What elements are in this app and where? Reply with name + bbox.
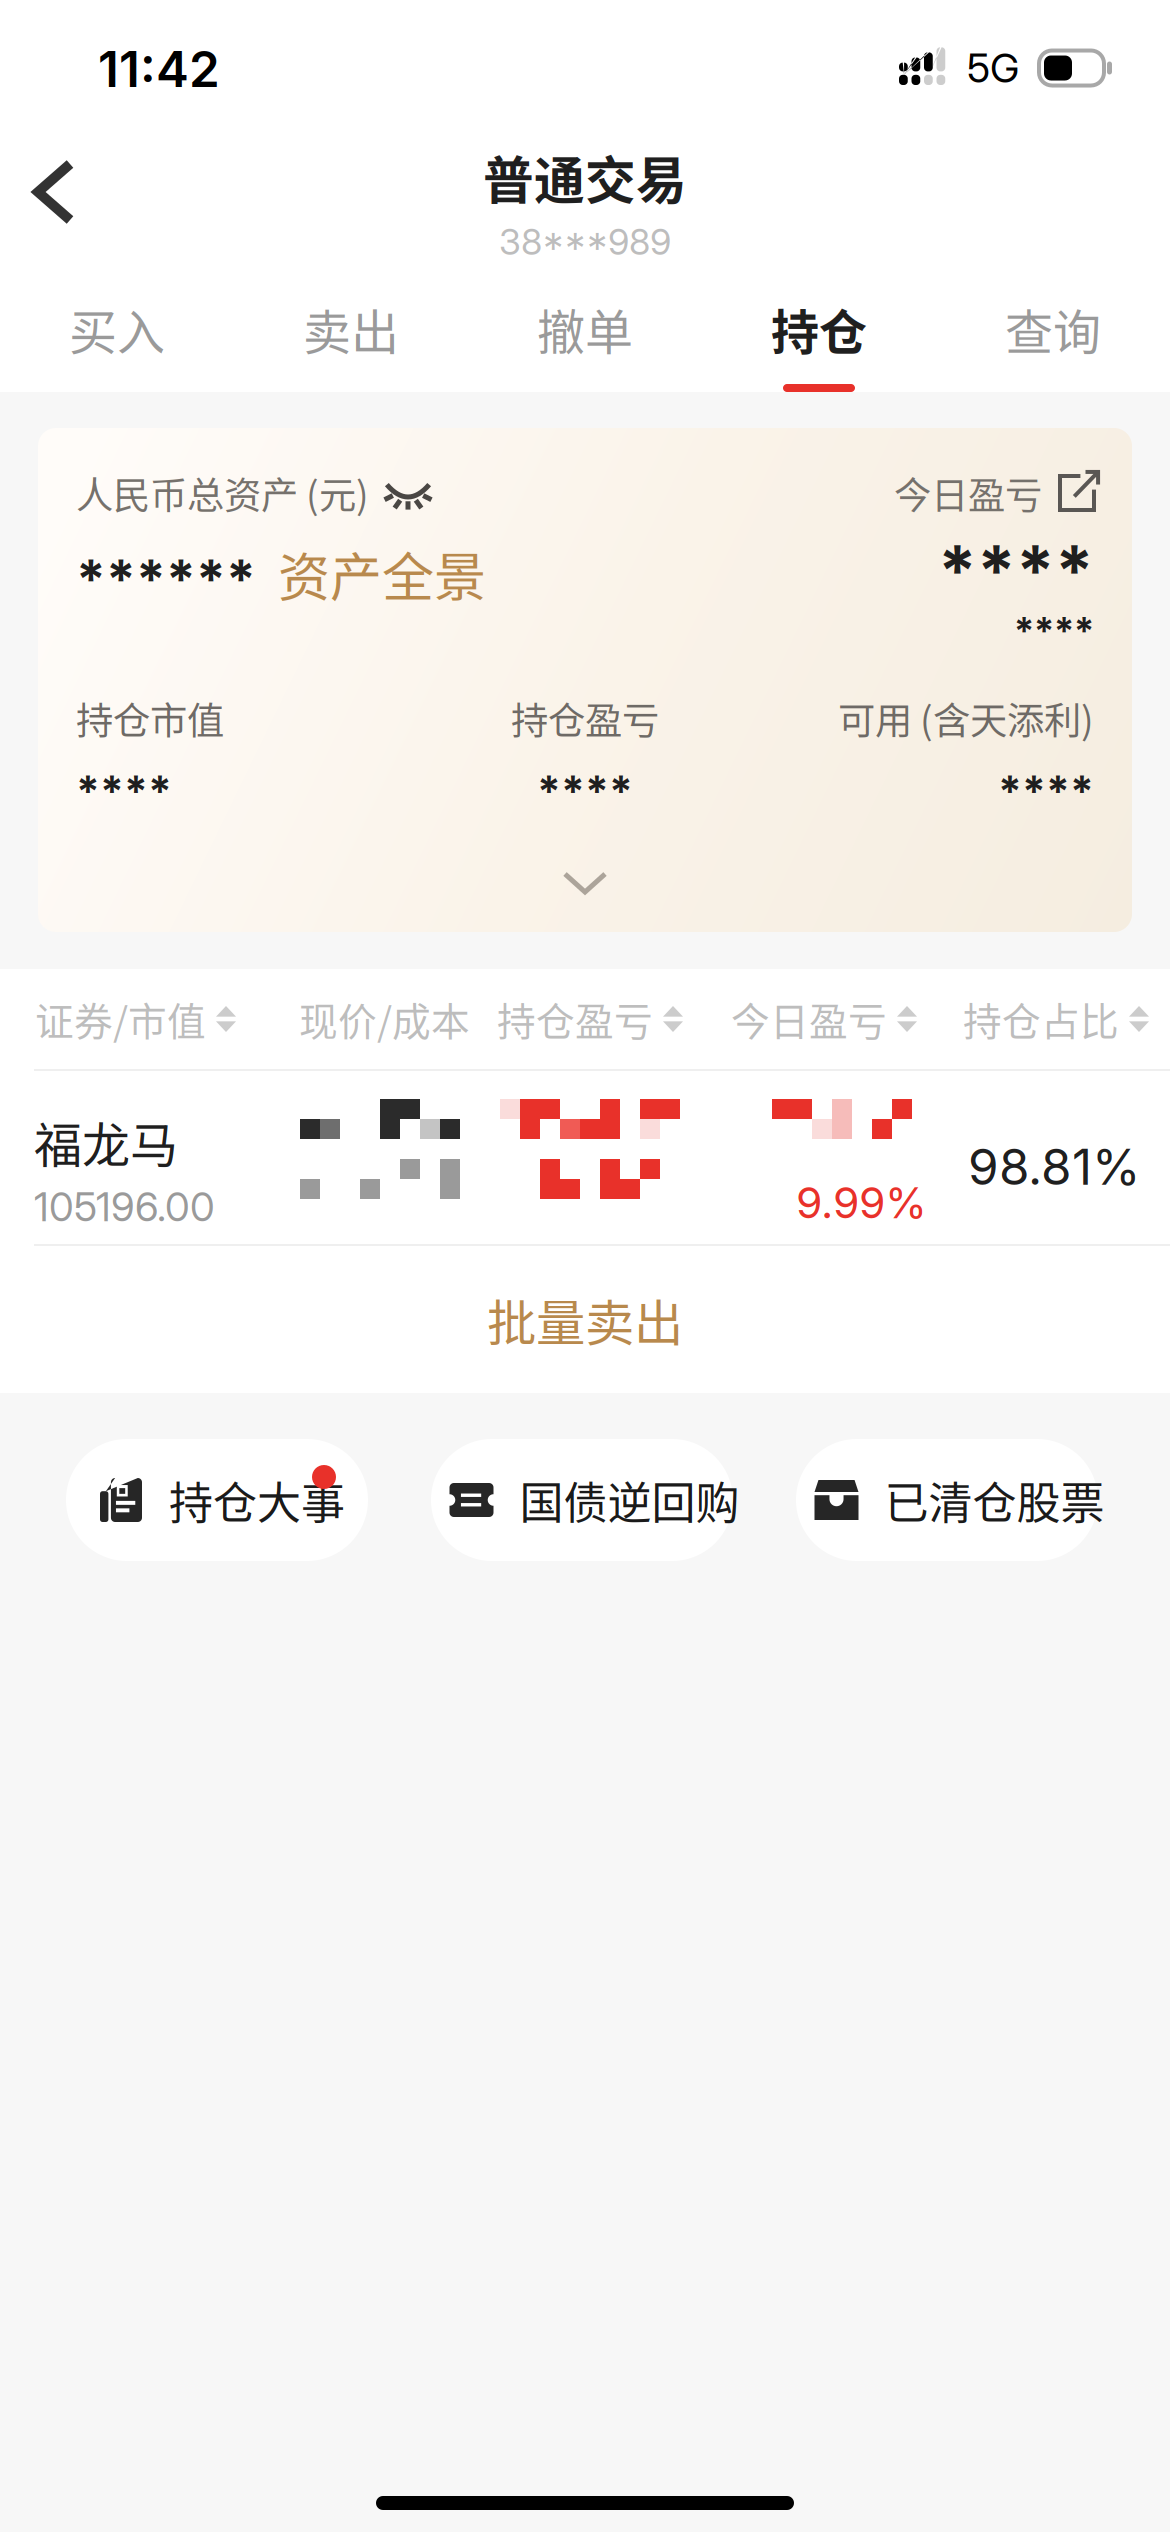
staticText: 11:42 <box>98 39 220 99</box>
staticText: 福龙马 <box>34 1107 178 1176</box>
staticText: **** <box>998 765 1094 817</box>
staticText: 持仓大事 <box>169 1468 345 1532</box>
staticText: 普通交易 <box>483 140 687 214</box>
staticText: 持仓盈亏 <box>497 991 653 1047</box>
staticText: 持仓占比 <box>963 991 1119 1047</box>
staticText: 今日盈亏 <box>894 466 1042 520</box>
staticText: 资产全景 <box>278 536 486 611</box>
staticText: 撤单 <box>537 294 633 363</box>
staticText: 现价/成本 <box>299 991 470 1047</box>
staticText: 持仓 <box>771 294 867 363</box>
button[interactable]: 持仓 <box>702 268 936 392</box>
button[interactable]: 查询 <box>936 268 1170 392</box>
staticText: **** <box>938 528 1094 612</box>
staticText: 持仓盈亏 <box>511 691 659 745</box>
button[interactable]: 持仓大事 <box>66 1439 368 1561</box>
staticText: 105196.00 <box>34 1182 215 1231</box>
staticText: 批量卖出 <box>487 1284 683 1355</box>
staticText: 38***989 <box>499 220 671 263</box>
staticText: 今日盈亏 <box>731 991 887 1047</box>
staticText: 可用 (含天添利) <box>838 691 1094 745</box>
staticText: 98.81% <box>968 1137 1140 1197</box>
staticText: 证券/市值 <box>35 991 206 1047</box>
button[interactable]: 国债逆回购 <box>431 1439 733 1561</box>
button[interactable]: 已清仓股票 <box>796 1439 1098 1561</box>
button[interactable]: 撤单 <box>468 268 702 392</box>
staticText: 人民币总资产 (元) <box>76 466 369 520</box>
staticText: 9.99% <box>796 1177 927 1229</box>
staticText: 已清仓股票 <box>884 1468 1104 1532</box>
staticText: 5G <box>967 44 1019 92</box>
staticText: **** <box>537 765 633 817</box>
staticText: ****** <box>76 547 256 611</box>
staticText: **** <box>76 765 172 817</box>
staticText: 国债逆回购 <box>519 1468 739 1532</box>
button[interactable]: 批量卖出 <box>0 1246 1170 1393</box>
staticText: 查询 <box>1005 294 1101 363</box>
button[interactable]: 返回 <box>0 128 112 256</box>
staticText: **** <box>1014 608 1094 653</box>
staticText: 买入 <box>69 294 165 363</box>
staticText: 持仓市值 <box>76 691 224 745</box>
staticText: 卖出 <box>303 294 399 363</box>
button[interactable]: 卖出 <box>234 268 468 392</box>
button[interactable]: 买入 <box>0 268 234 392</box>
